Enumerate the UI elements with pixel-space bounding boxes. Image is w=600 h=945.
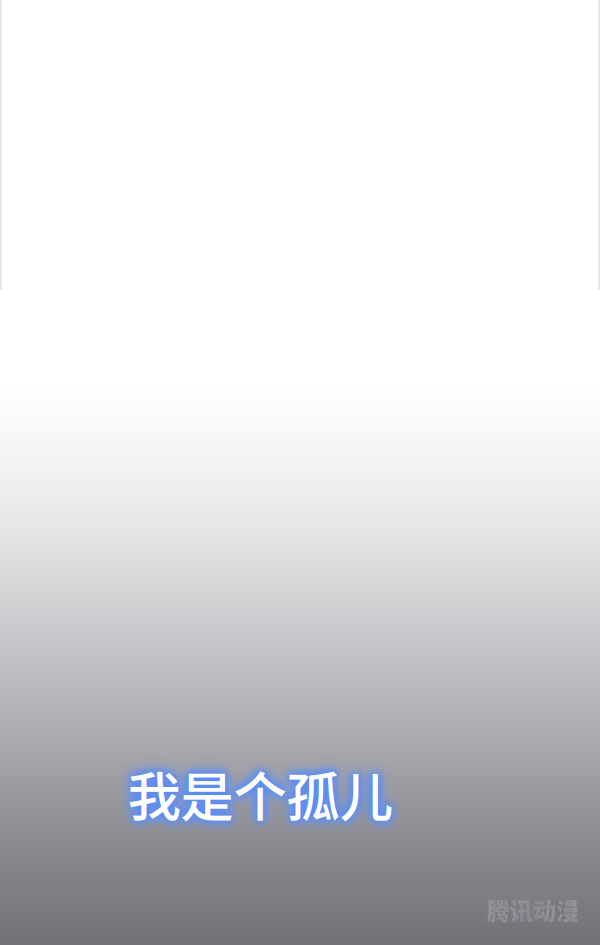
staticText: 我是个孤儿	[127, 755, 392, 832]
button[interactable]: Chapter page — tap to show reader contro…	[0, 0, 600, 945]
staticText: 腾讯动漫	[487, 893, 579, 926]
staticText: 腾讯动漫	[491, 895, 575, 924]
